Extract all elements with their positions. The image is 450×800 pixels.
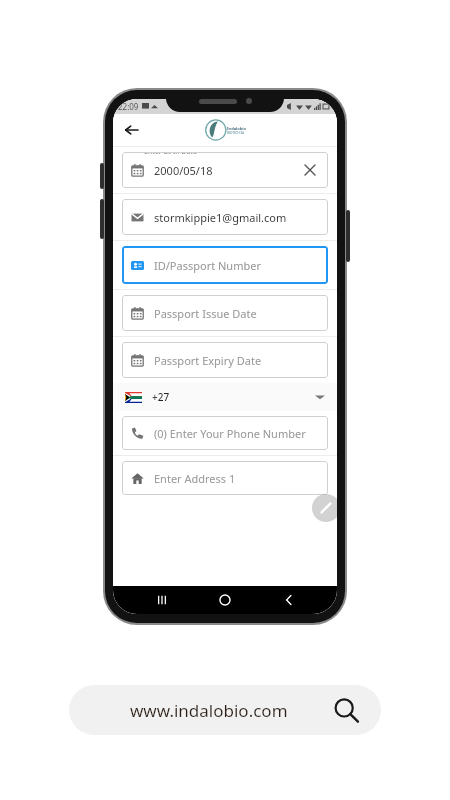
button[interactable]: Edit [312,494,337,522]
staticText: +27 [152,390,170,404]
button[interactable]: www.indalobio.com [69,685,381,735]
button[interactable]: Enter Address 1 [122,461,328,495]
staticText: Enter Address 1 [154,471,236,486]
button[interactable]: +27 [113,383,337,411]
other: Search [333,697,359,723]
button[interactable]: (0) Enter Your Phone Number [122,416,328,450]
staticText: stormkippie1@gmail.com [154,210,287,225]
staticText: (0) Enter Your Phone Number [154,426,306,441]
staticText: 2000/05/18 [154,163,213,178]
staticText: www.indalobio.com [130,699,288,722]
staticText: Passport Expiry Date [154,353,262,368]
button[interactable]: Back [274,586,304,614]
staticText: ID/Passport Number [154,258,261,273]
staticText: Enter Birth Date [144,152,197,157]
button[interactable]: Home [210,586,240,614]
other: Select country [315,392,325,402]
button[interactable]: Back [117,116,145,144]
button[interactable]: Passport Expiry Date [122,342,328,378]
button[interactable]: ID/Passport Number [122,246,328,284]
staticText: Indalobio [227,126,246,131]
staticText: 22:09 [118,101,139,112]
staticText: BIOTECH SA [227,131,245,135]
button[interactable]: Clear [301,161,319,179]
button[interactable]: stormkippie1@gmail.com [122,199,328,235]
button[interactable]: Recent apps [147,586,177,614]
staticText: Passport Issue Date [154,306,257,321]
button[interactable]: 2000/05/18 [122,152,328,188]
button[interactable]: Passport Issue Date [122,295,328,331]
